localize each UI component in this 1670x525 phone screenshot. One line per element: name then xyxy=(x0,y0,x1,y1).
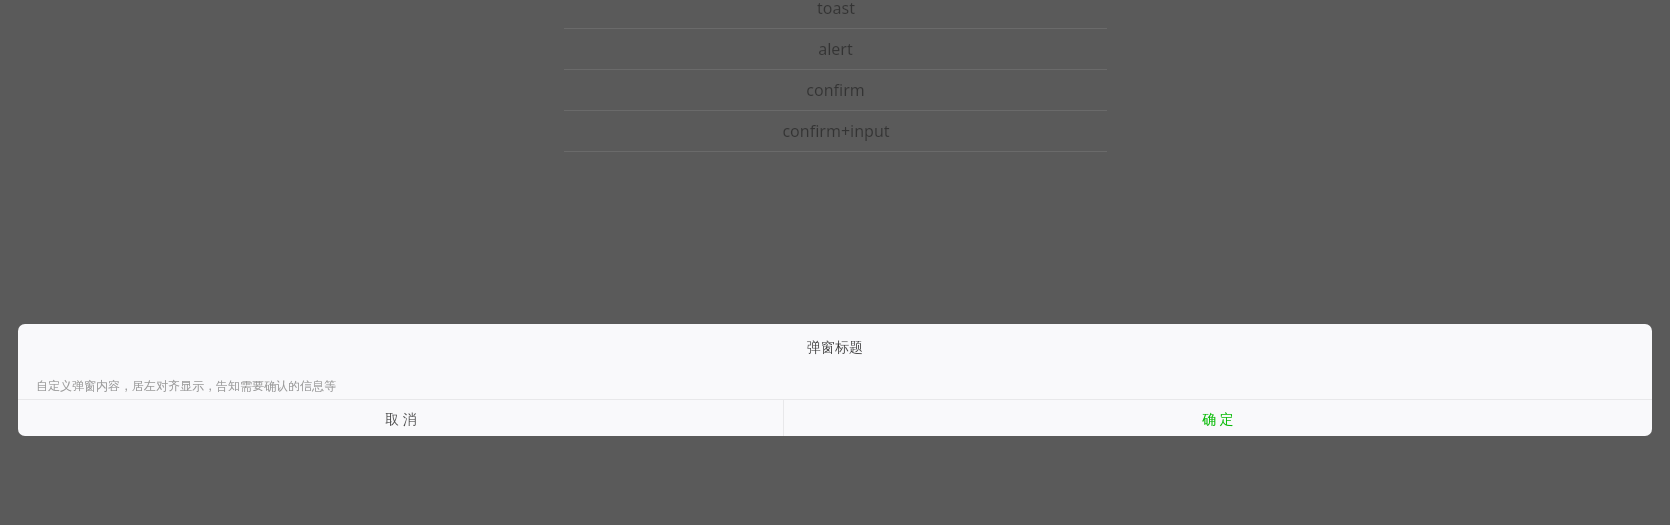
staticText: 自定义弹窗内容，居左对齐显示，告知需要确认的信息等 xyxy=(36,378,336,393)
staticText: confirm+input xyxy=(782,120,890,142)
button[interactable]: toast xyxy=(564,0,1107,29)
staticText: confirm xyxy=(806,79,865,101)
staticText: toast xyxy=(817,0,855,19)
staticText: 弹窗标题 xyxy=(807,339,863,357)
button[interactable]: alert xyxy=(564,29,1107,70)
staticText: 取 消 xyxy=(385,409,417,428)
staticText: alert xyxy=(818,38,853,60)
button[interactable]: confirm+input xyxy=(564,111,1107,152)
button[interactable]: 取 消 xyxy=(18,400,783,436)
button[interactable]: confirm xyxy=(564,70,1107,111)
staticText: 确 定 xyxy=(1202,409,1234,428)
button[interactable]: 确 定 xyxy=(784,400,1652,436)
